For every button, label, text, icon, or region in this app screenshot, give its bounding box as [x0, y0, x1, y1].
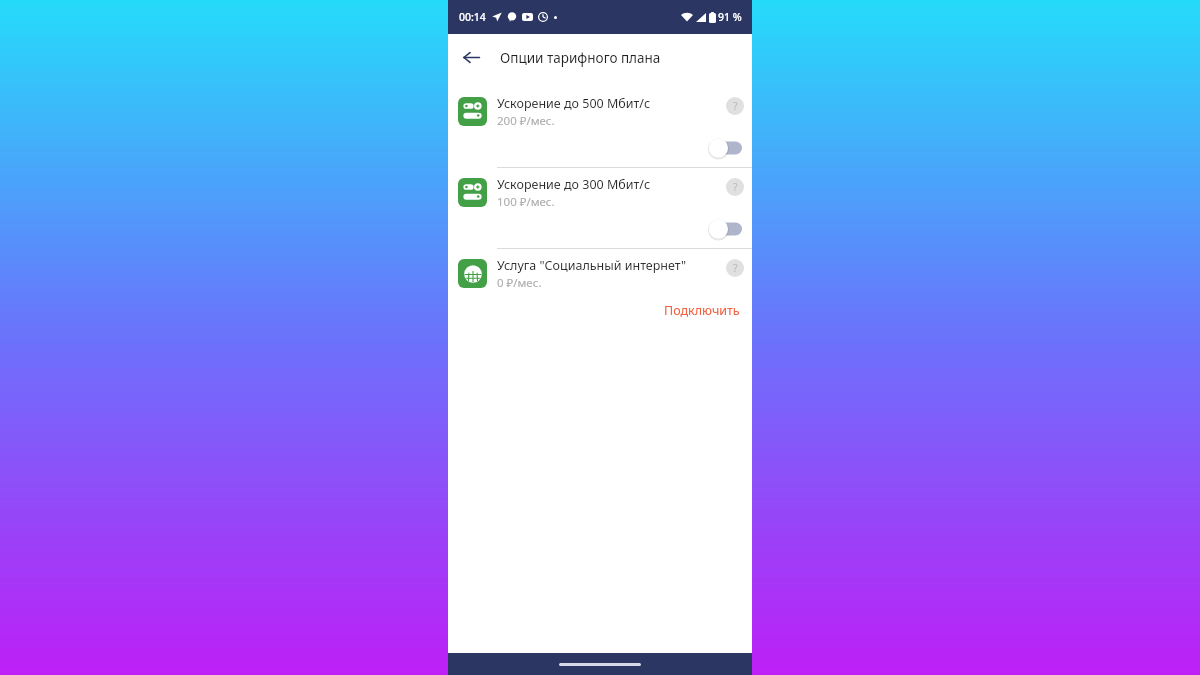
button[interactable]: Back	[448, 34, 495, 81]
staticText: 200 ₽/мес.	[497, 113, 555, 129]
staticText: Услуга "Социальный интернет"	[497, 257, 687, 274]
button[interactable]: Toggle option	[700, 135, 742, 161]
button[interactable]: Подключить	[660, 299, 744, 322]
staticText: Подключить	[664, 302, 740, 319]
staticText: Опции тарифного плана	[500, 49, 661, 67]
button[interactable]: Help	[726, 97, 744, 115]
button[interactable]: Ускорение до 500 Мбит/с	[448, 87, 752, 167]
button[interactable]: Help	[726, 178, 744, 196]
staticText: ?	[733, 99, 738, 113]
button[interactable]: Услуга "Социальный интернет"	[448, 249, 752, 329]
staticText: 91 %	[718, 10, 742, 24]
button[interactable]: Ускорение до 300 Мбит/с	[448, 168, 752, 248]
button[interactable]: Help	[726, 259, 744, 277]
staticText: 00:14	[459, 10, 486, 24]
staticText: 0 ₽/мес.	[497, 275, 542, 291]
button[interactable]: Toggle option	[700, 216, 742, 242]
staticText: Ускорение до 500 Мбит/с	[497, 95, 651, 112]
staticText: ?	[733, 261, 738, 275]
staticText: ?	[733, 180, 738, 194]
staticText: 100 ₽/мес.	[497, 194, 555, 210]
staticText: Ускорение до 300 Мбит/с	[497, 176, 651, 193]
